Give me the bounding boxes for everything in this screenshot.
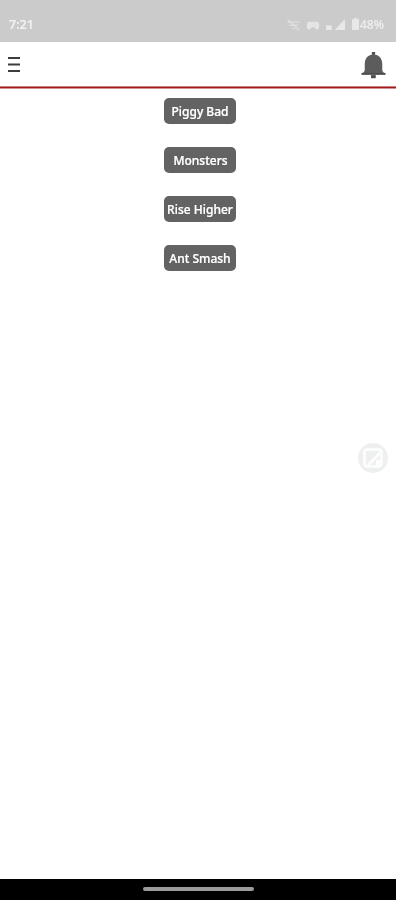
button[interactable]: Monsters (164, 147, 236, 173)
staticText: Rise Higher (167, 201, 233, 217)
button[interactable]: Open navigation menu (1, 51, 27, 77)
staticText: Monsters (173, 152, 228, 168)
staticText: 7:21 (9, 16, 34, 33)
staticText: Piggy Bad (171, 103, 229, 119)
button[interactable]: Ant Smash (164, 245, 236, 271)
staticText: 48% (360, 16, 384, 32)
staticText: Ant Smash (169, 250, 231, 266)
button[interactable]: Piggy Bad (164, 98, 236, 124)
button[interactable]: Rise Higher (164, 196, 236, 222)
button[interactable]: Rotate screen (358, 443, 388, 473)
button[interactable]: Notifications (360, 52, 387, 79)
